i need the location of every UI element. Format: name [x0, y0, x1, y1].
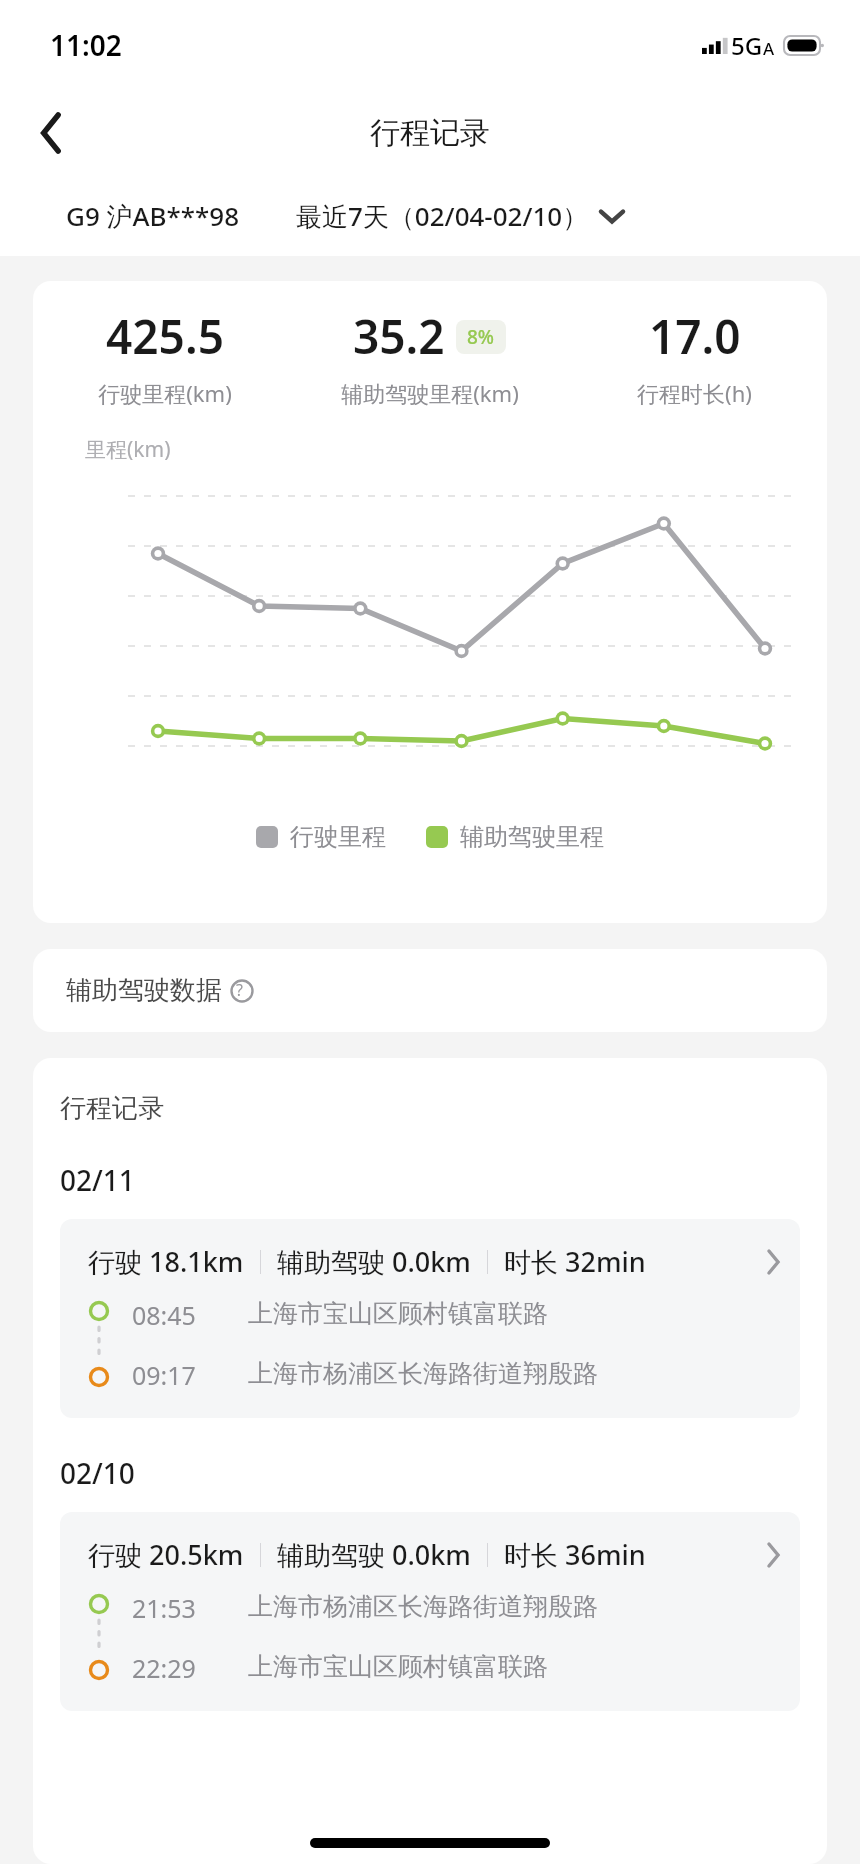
staticText: 行驶 20.5km	[88, 1536, 244, 1573]
staticText: 辅助驾驶 0.0km	[277, 1536, 471, 1573]
staticText: 02/10	[60, 1454, 135, 1492]
button[interactable]: 行驶 18.1km	[60, 1219, 800, 1418]
staticText: 行驶 18.1km	[88, 1243, 244, 1280]
staticText: 02/11	[60, 1161, 135, 1199]
staticText: 09:17	[132, 1358, 232, 1392]
staticText: 21:53	[132, 1591, 232, 1625]
staticText: 辅助驾驶里程(km)	[341, 378, 519, 408]
button[interactable]: Back	[22, 103, 82, 163]
staticText: 行程记录	[370, 114, 490, 152]
button[interactable]: 行驶 20.5km	[60, 1512, 800, 1711]
staticText: G9 沪AB***98	[66, 198, 240, 234]
staticText: 辅助驾驶里程	[460, 822, 604, 852]
staticText: 行驶里程(km)	[98, 378, 232, 408]
staticText: 上海市杨浦区长海路街道翔殷路	[248, 1591, 598, 1622]
staticText: A	[763, 37, 775, 60]
staticText: 最近7天（02/04-02/10）	[296, 198, 589, 234]
staticText: 行驶里程	[290, 822, 386, 852]
button[interactable]: 最近7天（02/04-02/10）	[296, 198, 623, 234]
staticText: 17.0	[649, 305, 741, 368]
button[interactable]: 辅助驾驶里程	[426, 822, 604, 852]
staticText: 上海市宝山区顾村镇富联路	[248, 1298, 548, 1329]
staticText: 425.5	[106, 305, 224, 368]
button[interactable]: 辅助驾驶数据	[33, 949, 827, 1032]
staticText: 时长 32min	[504, 1243, 646, 1280]
staticText: ?	[236, 979, 243, 1001]
staticText: 行程记录	[60, 1092, 164, 1125]
staticText: 35.2	[353, 305, 445, 368]
staticText: 时长 36min	[504, 1536, 646, 1573]
staticText: 上海市杨浦区长海路街道翔殷路	[248, 1358, 598, 1389]
staticText: 里程(km)	[85, 435, 171, 464]
staticText: 辅助驾驶 0.0km	[277, 1243, 471, 1280]
staticText: 11:02	[50, 26, 122, 64]
staticText: 22:29	[132, 1651, 232, 1685]
staticText: 5G	[731, 29, 763, 62]
staticText: 8%	[467, 324, 495, 350]
button[interactable]: 行驶里程	[256, 822, 386, 852]
staticText: 辅助驾驶数据	[66, 974, 222, 1007]
staticText: 行程时长(h)	[637, 378, 752, 408]
staticText: 上海市宝山区顾村镇富联路	[248, 1651, 548, 1682]
staticText: 08:45	[132, 1298, 232, 1332]
